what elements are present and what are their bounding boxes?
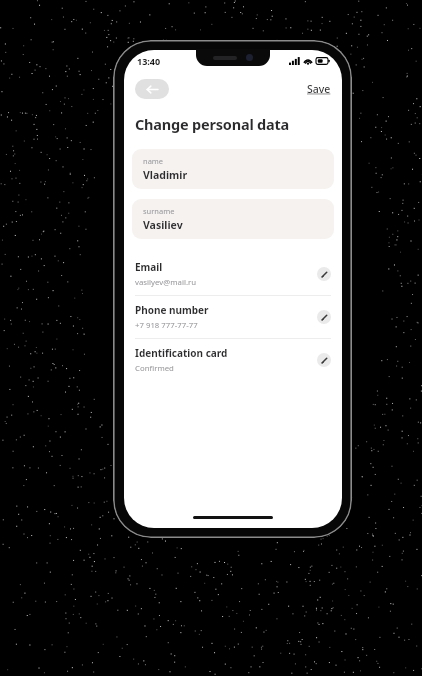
button[interactable]: Phone number: [124, 296, 342, 338]
staticText: name: [143, 156, 164, 166]
staticText: Identification card: [135, 346, 228, 360]
staticText: surname: [143, 206, 175, 216]
button[interactable]: name: [132, 149, 334, 189]
staticText: Change personal data: [135, 114, 290, 134]
button[interactable]: Edit Email: [317, 267, 331, 281]
staticText: Email: [135, 260, 163, 274]
staticText: Vasiliev: [143, 218, 183, 232]
button[interactable]: surname: [132, 199, 334, 239]
staticText: Phone number: [135, 303, 209, 317]
button[interactable]: Edit Phone number: [317, 310, 331, 324]
staticText: Vladimir: [143, 168, 188, 182]
button[interactable]: Save: [307, 82, 331, 96]
button[interactable]: Identification card: [124, 339, 342, 381]
staticText: +7 918 777-77-77: [135, 320, 198, 331]
button[interactable]: Email: [124, 253, 342, 295]
button[interactable]: Back: [135, 79, 169, 99]
button[interactable]: Edit Identification card: [317, 353, 331, 367]
staticText: 13:40: [137, 55, 161, 67]
staticText: Confirmed: [135, 363, 174, 374]
staticText: vasilyev@mail.ru: [135, 277, 197, 288]
staticText: Save: [307, 82, 331, 96]
